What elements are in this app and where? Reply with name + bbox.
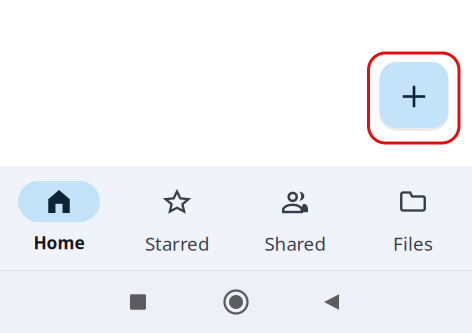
button[interactable]: Home [208,271,264,333]
staticText: Starred [145,231,209,256]
staticText: Shared [264,231,325,256]
button[interactable]: Recents [110,271,166,333]
staticText: Home [33,231,84,254]
button[interactable]: Shared [236,166,354,270]
button[interactable]: Home [0,166,118,270]
staticText: Files [393,231,433,256]
button[interactable]: Back [303,271,359,333]
button[interactable]: Files [354,166,472,270]
button[interactable]: Create [380,62,448,128]
button[interactable]: Starred [118,166,236,270]
